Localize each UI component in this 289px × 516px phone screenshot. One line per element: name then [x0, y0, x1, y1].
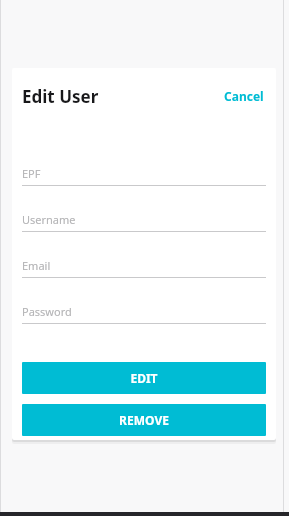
button[interactable]: EPF — [22, 162, 266, 186]
button[interactable]: REMOVE — [22, 404, 266, 436]
staticText: Cancel — [224, 88, 264, 104]
staticText: Edit User — [22, 85, 99, 108]
staticText: REMOVE — [119, 412, 169, 428]
button[interactable]: Email — [22, 254, 266, 278]
button[interactable]: Cancel — [222, 85, 266, 107]
staticText: Username — [22, 212, 76, 227]
staticText: EDIT — [130, 370, 158, 386]
button[interactable]: EDIT — [22, 362, 266, 394]
button[interactable]: Password — [22, 300, 266, 324]
staticText: Password — [22, 304, 72, 319]
staticText: EPF — [22, 166, 41, 181]
staticText: Email — [22, 258, 51, 273]
button[interactable]: Username — [22, 208, 266, 232]
